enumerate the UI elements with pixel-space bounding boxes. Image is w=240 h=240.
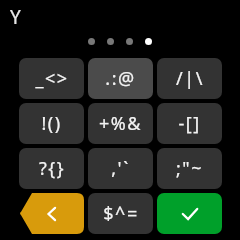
button[interactable]: _<> (19, 58, 84, 99)
staticText: ,'` (111, 156, 130, 181)
button[interactable]: ?{} (19, 148, 84, 189)
staticText: .:@ (105, 66, 136, 91)
button[interactable]: /|\ (157, 58, 222, 99)
button[interactable]: Confirm (157, 193, 222, 234)
staticText: $^= (103, 201, 139, 226)
button[interactable]: .:@ (88, 58, 153, 99)
button[interactable]: Backspace (19, 193, 84, 234)
staticText: -[] (178, 111, 201, 136)
staticText: ;"~ (176, 156, 203, 181)
staticText: /|\ (176, 66, 204, 91)
button[interactable]: ;"~ (157, 148, 222, 189)
button[interactable]: $^= (88, 193, 153, 234)
button[interactable]: !() (19, 103, 84, 144)
staticText: Y (10, 4, 21, 30)
button[interactable]: +%& (88, 103, 153, 144)
button[interactable]: ,'` (88, 148, 153, 189)
button[interactable]: -[] (157, 103, 222, 144)
staticText: _<> (35, 66, 69, 91)
staticText: +%& (99, 111, 142, 136)
staticText: ?{} (39, 156, 65, 181)
staticText: !() (41, 111, 62, 136)
